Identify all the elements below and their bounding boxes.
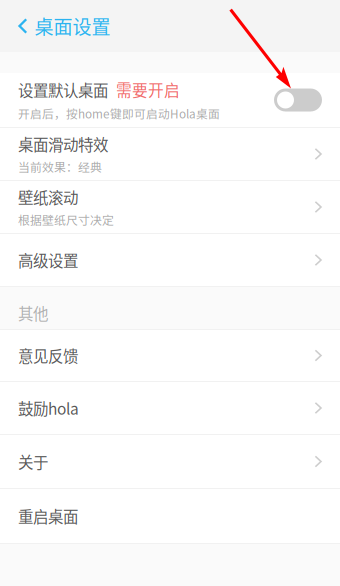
staticText: 壁纸滚动 <box>18 186 78 208</box>
staticText: 开启后，按home键即可启动Hola桌面 <box>18 105 220 122</box>
button[interactable]: 桌面滑动特效 <box>0 128 340 180</box>
staticText: 意见反馈 <box>18 344 78 367</box>
button[interactable]: 壁纸滚动 <box>0 181 340 233</box>
button[interactable]: 鼓励hola <box>0 382 340 434</box>
button[interactable]: 桌面设置 <box>0 0 121 52</box>
staticText: 关于 <box>18 450 48 473</box>
staticText: 高级设置 <box>18 249 78 271</box>
button[interactable]: 意见反馈 <box>0 330 340 381</box>
staticText: 根据壁纸尺寸决定 <box>18 211 114 228</box>
staticText: 设置默认桌面 <box>18 78 108 101</box>
staticText: 当前效果：经典 <box>18 158 102 175</box>
staticText: 桌面设置 <box>35 12 111 40</box>
button[interactable]: 重启桌面 <box>0 489 340 543</box>
button[interactable]: 设置默认桌面开关 <box>274 88 322 111</box>
staticText: 桌面滑动特效 <box>18 133 108 155</box>
staticText: 其他 <box>18 302 48 324</box>
staticText: 需要开启 <box>116 78 180 101</box>
button[interactable]: 高级设置 <box>0 234 340 286</box>
staticText: 重启桌面 <box>18 505 78 527</box>
staticText: 鼓励hola <box>18 397 79 419</box>
button[interactable]: 关于 <box>0 435 340 488</box>
